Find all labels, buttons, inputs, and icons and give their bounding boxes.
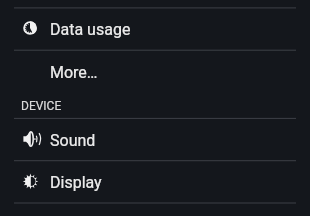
staticText: Sound [50,131,96,150]
staticText: Data usage [50,20,131,39]
staticText: More… [50,63,98,82]
button[interactable]: Data usage [0,7,310,49]
staticText: DEVICE [21,99,62,113]
button[interactable]: More… [0,50,310,92]
staticText: Display [50,173,102,192]
button[interactable]: Display [0,160,310,202]
button[interactable]: Sound [0,118,310,160]
